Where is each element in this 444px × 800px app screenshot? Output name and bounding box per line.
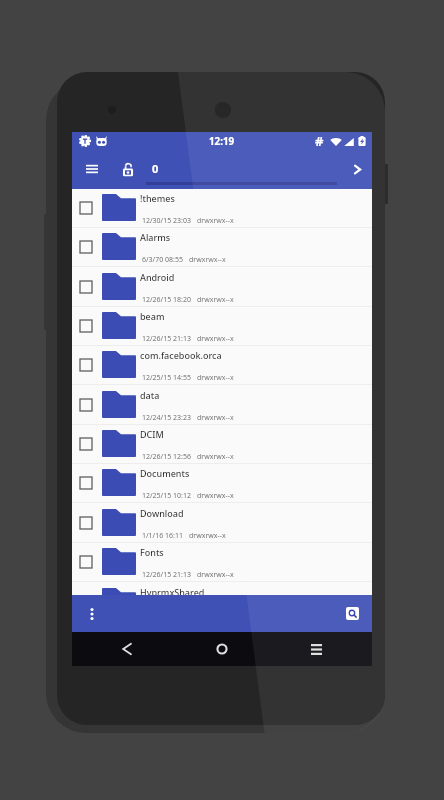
staticText: 12/26/15 18:20 [142, 295, 191, 305]
staticText: drwxrwx--x [197, 413, 234, 423]
staticText: drwxrwx--x [197, 570, 234, 580]
staticText: drwxrwx--x [197, 334, 234, 344]
staticText: 12/25/15 10:12 [142, 491, 191, 501]
staticText: 1/1/16 16:11 [142, 531, 183, 541]
button[interactable]: Toggle read write mode [116, 158, 140, 182]
staticText: com.facebook.orca [140, 349, 222, 361]
staticText: Android [140, 271, 175, 283]
staticText: !themes [140, 192, 175, 204]
button[interactable]: Recent apps [303, 636, 329, 662]
staticText: 0 [152, 161, 159, 176]
staticText: 12/25/15 14:55 [142, 373, 191, 383]
staticText: Alarms [140, 231, 171, 243]
button[interactable]: Back [114, 636, 140, 662]
staticText: 6/3/70 08:55 [142, 255, 183, 265]
staticText: Fonts [140, 546, 164, 558]
staticText: DCIM [140, 428, 164, 440]
button[interactable]: Open navigation menu [80, 157, 104, 181]
staticText: HyprmxShared [140, 586, 205, 598]
button[interactable]: Alarms [72, 228, 372, 267]
staticText: 12/24/15 23:23 [142, 413, 191, 423]
button[interactable]: com.facebook.orca [72, 346, 372, 385]
staticText: 12/26/15 12:56 [142, 452, 191, 462]
button[interactable]: More options [79, 601, 104, 626]
button[interactable]: beam [72, 307, 372, 346]
button[interactable]: Download [72, 504, 372, 543]
button[interactable]: Fonts [72, 543, 372, 582]
button[interactable]: Search [346, 607, 359, 620]
button[interactable]: HyprmxShared [72, 583, 372, 622]
button[interactable]: Home [209, 636, 235, 662]
staticText: drwxrwx--x [189, 531, 226, 541]
staticText: drwxrwx--x [189, 255, 226, 265]
staticText: # [315, 132, 324, 150]
staticText: drwxrwx--x [197, 295, 234, 305]
button[interactable]: Forward [344, 156, 370, 182]
staticText: 12/26/15 21:13 [142, 334, 191, 344]
staticText: Download [140, 507, 184, 519]
staticText: data [140, 389, 160, 401]
staticText: 12/30/15 23:03 [142, 216, 191, 226]
button[interactable]: Android [72, 268, 372, 307]
staticText: 12:19 [209, 135, 235, 148]
button[interactable]: DCIM [72, 425, 372, 464]
staticText: drwxrwx--x [197, 452, 234, 462]
staticText: 12/26/15 21:13 [142, 570, 191, 580]
button[interactable]: Documents [72, 464, 372, 503]
staticText: drwxrwx--x [197, 216, 234, 226]
staticText: Documents [140, 467, 190, 479]
button[interactable]: data [72, 386, 372, 425]
staticText: drwxrwx--x [197, 373, 234, 383]
button[interactable]: !themes [72, 189, 372, 228]
staticText: drwxrwx--x [197, 491, 234, 501]
staticText: beam [140, 310, 165, 322]
